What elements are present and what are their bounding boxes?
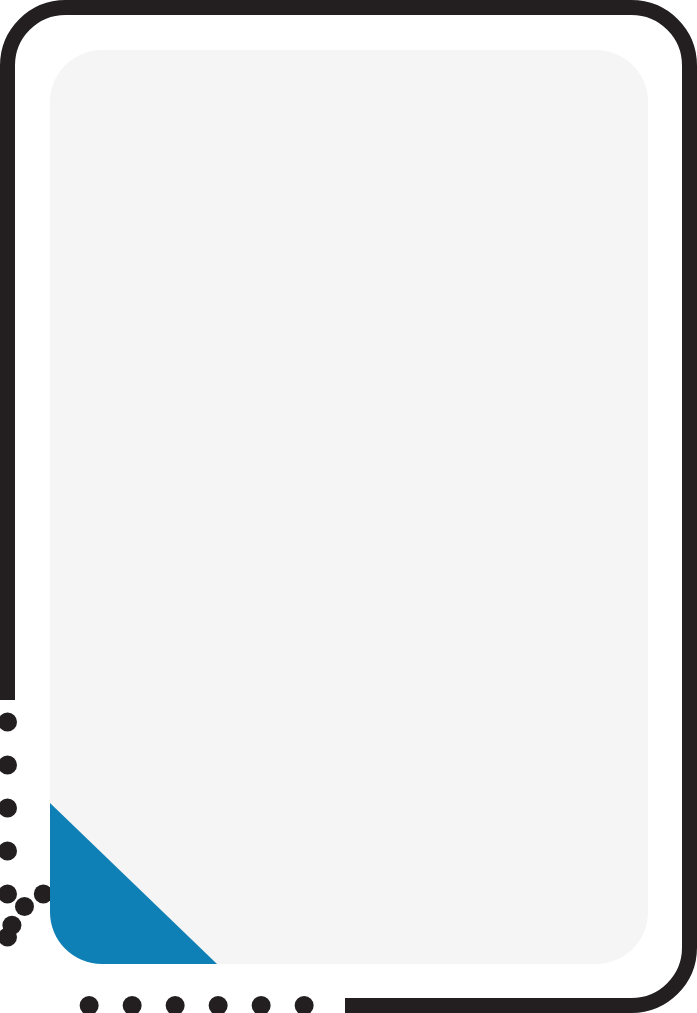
button[interactable]: Rounded card outline with blue corner ac… [0,0,697,1013]
